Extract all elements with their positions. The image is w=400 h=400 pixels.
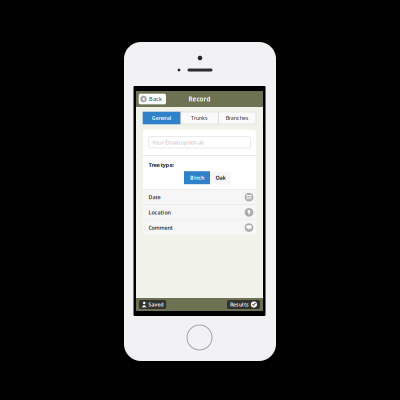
button[interactable]: General bbox=[143, 112, 180, 124]
button[interactable]: Comment bbox=[143, 220, 256, 235]
staticText: Back bbox=[149, 95, 162, 103]
staticText: Oak bbox=[215, 174, 225, 181]
button[interactable]: Back bbox=[139, 94, 166, 104]
staticText: Branches bbox=[226, 114, 249, 122]
staticText: General bbox=[152, 114, 172, 122]
staticText: Your Email (optional) bbox=[152, 138, 204, 146]
button[interactable]: Branches bbox=[219, 112, 256, 124]
staticText: Tree type: bbox=[148, 161, 174, 169]
button[interactable]: Date bbox=[143, 190, 256, 204]
staticText: Location bbox=[148, 209, 170, 216]
staticText: Date bbox=[148, 193, 160, 201]
button[interactable]: Results bbox=[227, 300, 260, 309]
staticText: Trunks bbox=[191, 114, 208, 122]
button[interactable]: Birch bbox=[184, 171, 210, 184]
staticText: Birch bbox=[190, 174, 204, 181]
staticText: Record bbox=[188, 95, 210, 103]
button[interactable]: Saved bbox=[139, 300, 166, 309]
staticText: Results bbox=[230, 301, 249, 308]
staticText: Comment bbox=[148, 224, 172, 231]
staticText: Saved bbox=[148, 301, 163, 308]
button[interactable]: Trunks bbox=[181, 112, 218, 124]
button[interactable]: Oak bbox=[210, 171, 231, 184]
button[interactable]: Location bbox=[143, 205, 256, 220]
